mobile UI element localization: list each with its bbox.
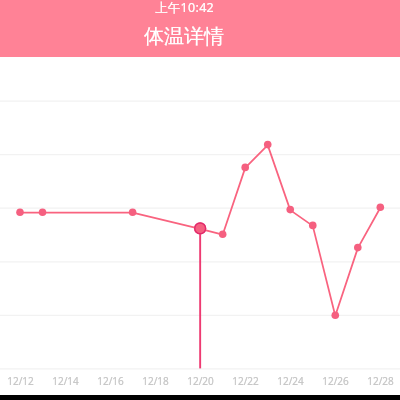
staticText: 12/14 [52, 374, 79, 388]
staticText: 12/18 [142, 374, 169, 388]
button[interactable]: 12/26 [313, 374, 357, 388]
staticText: 12/16 [97, 374, 124, 388]
button[interactable]: 体温详情 [0, 0, 400, 57]
staticText: 12/20 [187, 374, 214, 388]
staticText: 上午10:42 [155, 0, 215, 16]
staticText: 12/24 [277, 374, 304, 388]
button[interactable]: 体温折线图 [0, 57, 400, 395]
staticText: 12/12 [7, 374, 34, 388]
button[interactable]: 12/12 [0, 374, 42, 388]
staticText: 12/22 [232, 374, 259, 388]
staticText: 12/28 [367, 374, 394, 388]
staticText: 12/26 [322, 374, 349, 388]
button[interactable]: 12/20 [178, 374, 222, 388]
staticText: 体温详情 [144, 24, 224, 49]
button[interactable]: 12/18 [133, 374, 177, 388]
button[interactable]: 12/14 [43, 374, 87, 388]
button[interactable]: 12/28 [358, 374, 400, 388]
button[interactable]: 12/16 [88, 374, 132, 388]
button[interactable]: 12/24 [268, 374, 312, 388]
button[interactable]: 12/22 [223, 374, 267, 388]
